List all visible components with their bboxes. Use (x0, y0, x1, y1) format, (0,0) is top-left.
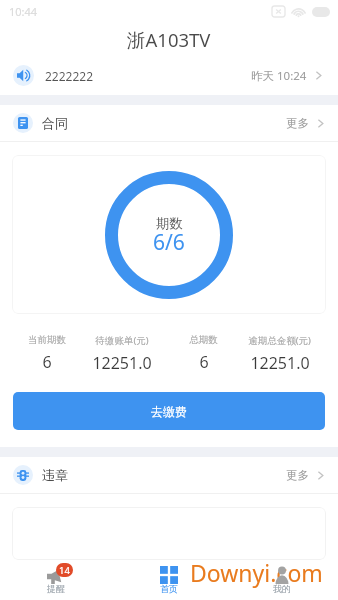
staticText: 浙A103TV (127, 27, 211, 52)
staticText: 14 (59, 564, 70, 577)
staticText: 12251.0 (250, 352, 310, 370)
button[interactable]: Profile (225, 560, 338, 595)
staticText: 合同 (42, 115, 68, 131)
staticText: 期数 (156, 215, 183, 232)
button[interactable]: Reminders (0, 560, 112, 595)
button[interactable]: 2222222 (0, 56, 338, 95)
staticText: 我的 (273, 583, 291, 594)
staticText: 提醒 (47, 583, 65, 594)
staticText: 6/6 (153, 228, 185, 257)
staticText: 更多 (286, 116, 309, 130)
staticText: 总期数 (189, 334, 218, 346)
staticText: 当前期数 (28, 334, 66, 346)
staticText: 昨天 10:24 (251, 68, 307, 84)
staticText: 12251.0 (92, 352, 152, 370)
staticText: 首页 (160, 583, 178, 594)
button[interactable]: 合同 (0, 105, 338, 141)
staticText: Downyi.com (190, 557, 323, 588)
button[interactable]: 去缴费 (13, 392, 325, 430)
staticText: 违章 (42, 467, 68, 483)
staticText: 逾期总金额(元) (248, 334, 311, 347)
button[interactable]: Home (112, 560, 225, 595)
staticText: 去缴费 (151, 404, 187, 419)
button[interactable]: 违章 (0, 457, 338, 493)
staticText: 6 (199, 351, 209, 370)
staticText: 10:44 (9, 4, 38, 19)
staticText: 待缴账单(元) (95, 334, 149, 347)
staticText: 2222222 (45, 68, 94, 84)
staticText: 更多 (286, 468, 309, 482)
staticText: 6 (42, 351, 52, 370)
